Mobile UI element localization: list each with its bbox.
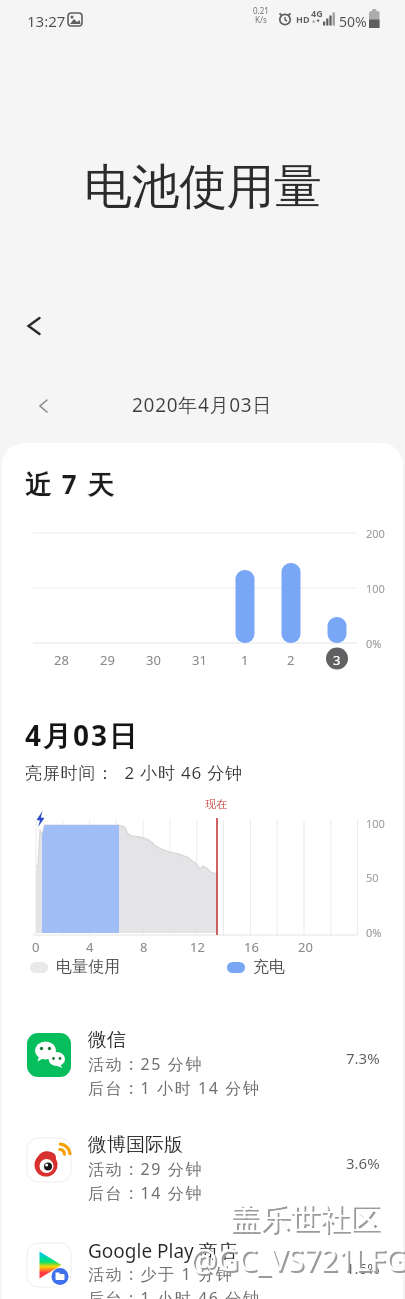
staticText: 31 [192, 651, 207, 669]
staticText: 2 [287, 651, 295, 669]
staticText: @GC_VS721LFG [190, 1239, 405, 1280]
staticText: 1.6% [346, 1258, 380, 1278]
staticText: 后台 : 1 小时 46 分钟 [88, 1287, 261, 1299]
staticText: 活动 : 少于 1 分钟 [88, 1263, 234, 1285]
staticText: 0% [366, 636, 382, 651]
staticText: 29 [100, 651, 115, 669]
staticText: 亮屏时间： 2 小时 46 分钟 [25, 761, 243, 784]
staticText: 1 [241, 651, 249, 669]
staticText: 4 [86, 938, 94, 956]
button[interactable] [0, 1230, 405, 1299]
staticText: 电量使用 [56, 957, 120, 977]
staticText: 13:27 [27, 11, 66, 31]
staticText: 8 [140, 938, 148, 956]
staticText: 4G [311, 7, 323, 19]
staticText: 盖乐世社区 [230, 1200, 380, 1238]
staticText: 后台 : 1 小时 14 分钟 [88, 1077, 261, 1099]
staticText: 微信 [88, 1028, 126, 1052]
staticText: 现在 [205, 797, 227, 811]
button[interactable] [0, 1125, 405, 1228]
button[interactable] [14, 306, 54, 346]
staticText: 50% [339, 12, 367, 31]
staticText: 3 [333, 651, 341, 669]
button[interactable] [0, 390, 405, 424]
staticText: 充电 [253, 957, 285, 977]
staticText: Google Play 商店 [88, 1238, 237, 1264]
staticText: @GC_VS721LFG [192, 1241, 405, 1282]
staticText: 0 [32, 938, 40, 956]
staticText: 50 [366, 870, 379, 885]
staticText: 4月03日 [25, 716, 140, 754]
staticText: 100 [366, 581, 385, 596]
staticText: 后台 : 14 分钟 [88, 1182, 204, 1204]
staticText: 近 7 天 [25, 466, 116, 502]
staticText: 微博国际版 [88, 1133, 183, 1157]
staticText: K/s [255, 14, 267, 25]
staticText: 盖乐世社区 [232, 1202, 382, 1240]
staticText: 20 [298, 938, 313, 956]
staticText: 30 [146, 651, 161, 669]
staticText: 7.3% [346, 1048, 380, 1068]
staticText: 3.6% [346, 1153, 380, 1173]
staticText: 28 [54, 651, 69, 669]
staticText: 12 [190, 938, 205, 956]
staticText: 0.21 [253, 5, 269, 16]
staticText: 200 [366, 526, 385, 541]
button[interactable] [0, 1020, 405, 1123]
staticText: 100 [366, 816, 385, 831]
staticText: 16 [244, 938, 259, 956]
staticText: 活动 : 29 分钟 [88, 1158, 204, 1180]
staticText: 电池使用量 [84, 157, 322, 217]
staticText: 0% [366, 925, 382, 940]
staticText: HD [296, 13, 310, 25]
staticText: 2020年4月03日 [132, 392, 273, 418]
staticText: 活动 : 25 分钟 [88, 1053, 204, 1075]
